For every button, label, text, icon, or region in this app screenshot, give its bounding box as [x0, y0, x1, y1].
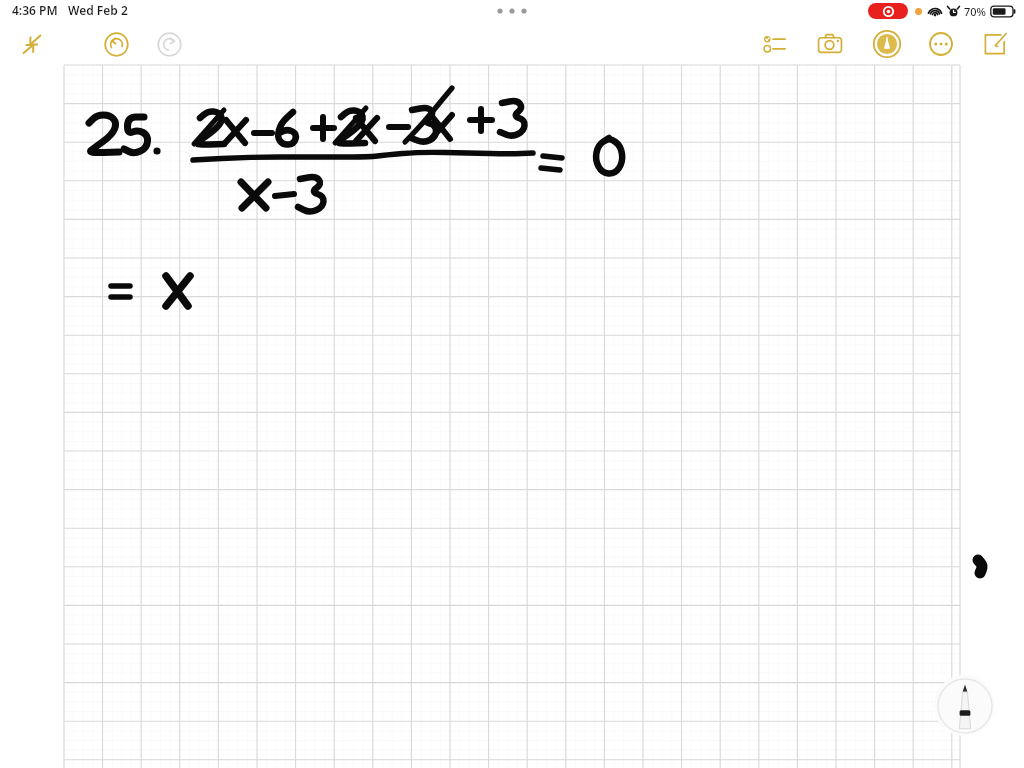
- button[interactable]: Redo: [151, 26, 187, 62]
- button[interactable]: More options: [923, 26, 959, 62]
- button[interactable]: Checklist: [757, 26, 793, 62]
- staticText: Wed Feb 2: [68, 2, 128, 18]
- button[interactable]: Drawing tools: [869, 26, 905, 62]
- staticText: 70%: [964, 4, 986, 19]
- button[interactable]: New note: [977, 26, 1013, 62]
- button[interactable]: Insert photo: [812, 26, 848, 62]
- staticText: 4:36 PM: [12, 2, 58, 18]
- button[interactable]: Collapse: [16, 28, 48, 60]
- button[interactable]: Undo: [98, 26, 134, 62]
- button[interactable]: Pen tool: [934, 675, 995, 736]
